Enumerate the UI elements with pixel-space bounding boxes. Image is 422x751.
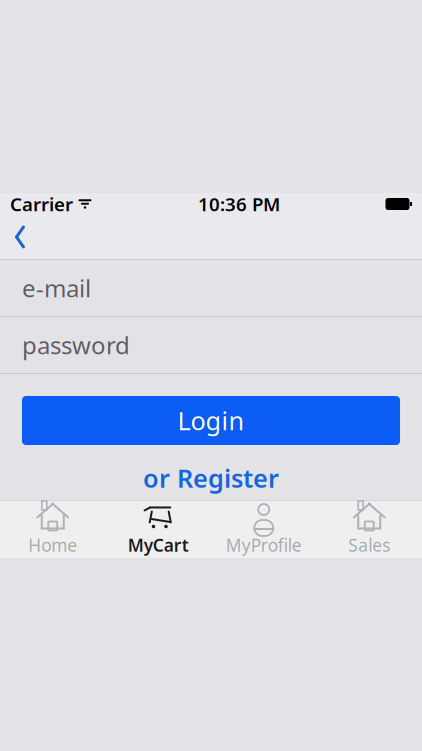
staticText: e-mail — [22, 272, 91, 304]
button[interactable]: e-mail — [0, 260, 422, 316]
button[interactable]: MyCart — [105, 501, 211, 558]
staticText: 10:36 PM — [198, 192, 280, 216]
staticText: Home — [28, 533, 77, 556]
button[interactable]: Home — [0, 501, 105, 558]
button[interactable]: password — [0, 317, 422, 373]
button[interactable]: or Register — [0, 464, 422, 492]
staticText: Sales — [348, 533, 390, 556]
staticText: Carrier — [10, 192, 73, 216]
staticText: Login — [177, 404, 244, 437]
staticText: MyCart — [128, 533, 189, 556]
button[interactable]: Login — [22, 396, 400, 445]
button[interactable]: Back — [0, 217, 42, 257]
staticText: password — [22, 329, 130, 361]
staticText: MyProfile — [226, 533, 302, 556]
button[interactable]: MyProfile — [211, 501, 316, 558]
staticText: or Register — [143, 461, 279, 495]
button[interactable]: Sales — [316, 501, 422, 558]
